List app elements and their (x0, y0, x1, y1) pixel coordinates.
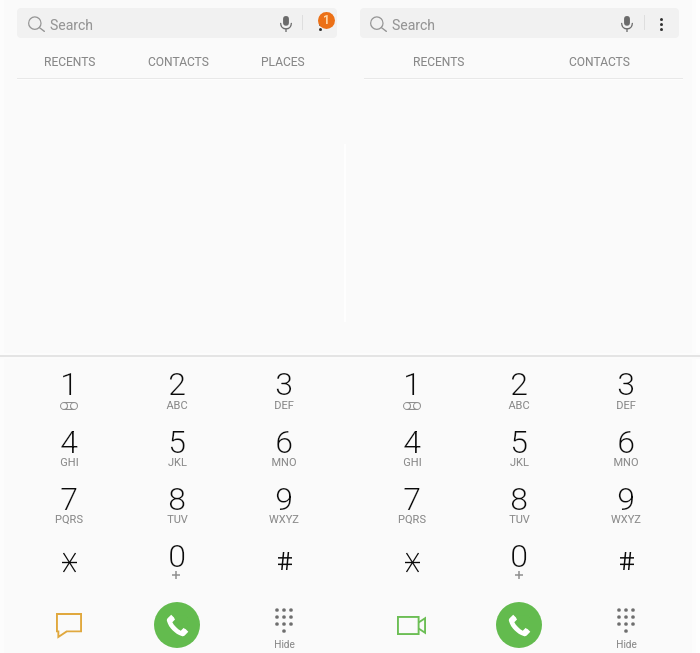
button[interactable] (24, 413, 114, 468)
staticText: Search (50, 17, 94, 33)
staticText: CONTACTS (148, 55, 209, 69)
staticText: MNO (271, 456, 297, 469)
staticText: RECENTS (44, 55, 96, 69)
button[interactable] (581, 355, 671, 410)
staticText: TUV (509, 513, 530, 526)
button[interactable] (581, 527, 671, 582)
button[interactable]: Call (154, 602, 200, 648)
button[interactable] (24, 355, 114, 410)
button[interactable]: CONTACTS (130, 50, 226, 74)
staticText: 9 (275, 480, 293, 518)
staticText: Search (392, 17, 436, 33)
staticText: 4 (403, 423, 421, 461)
button[interactable] (367, 413, 457, 468)
button[interactable] (367, 527, 457, 582)
button[interactable]: Call (496, 602, 542, 648)
staticText: 0 (510, 537, 528, 575)
staticText: 1 (403, 365, 421, 403)
staticText: WXYZ (269, 513, 299, 526)
button[interactable] (132, 470, 222, 525)
staticText: DEF (274, 399, 294, 412)
button[interactable] (132, 527, 222, 582)
button[interactable] (474, 413, 564, 468)
staticText: WXYZ (611, 513, 641, 526)
staticText: 1 (60, 365, 78, 403)
button[interactable]: Hide keypad (598, 600, 654, 652)
button[interactable] (367, 470, 457, 525)
staticText: 2 (510, 365, 528, 403)
staticText: 6 (617, 423, 635, 461)
staticText: ABC (508, 399, 530, 412)
staticText: Hide (274, 639, 295, 651)
staticText: 1 (323, 13, 330, 27)
button[interactable]: More options (313, 14, 327, 35)
staticText: JKL (168, 456, 187, 469)
button[interactable] (474, 527, 564, 582)
button[interactable]: More options (654, 14, 668, 35)
button[interactable] (474, 355, 564, 410)
button[interactable] (239, 470, 329, 525)
staticText: 0 (168, 537, 186, 575)
staticText: 5 (168, 423, 186, 461)
button[interactable] (367, 355, 457, 410)
staticText: Hide (616, 639, 637, 651)
staticText: DEF (616, 399, 636, 412)
button[interactable] (24, 470, 114, 525)
staticText: 7 (60, 480, 78, 518)
button[interactable] (132, 413, 222, 468)
staticText: GHI (60, 456, 79, 469)
staticText: CONTACTS (569, 55, 630, 69)
button[interactable]: 1 notification (318, 12, 335, 29)
staticText: PQRS (55, 513, 83, 526)
button[interactable] (474, 470, 564, 525)
staticText: 4 (60, 423, 78, 461)
button[interactable] (239, 413, 329, 468)
button[interactable]: Hide keypad (256, 600, 312, 652)
staticText: 5 (510, 423, 528, 461)
button[interactable] (24, 527, 114, 582)
button[interactable]: RECENTS (22, 50, 118, 74)
button[interactable] (239, 527, 329, 582)
button[interactable] (360, 8, 679, 38)
staticText: 9 (617, 480, 635, 518)
staticText: RECENTS (413, 55, 465, 69)
staticText: PQRS (398, 513, 426, 526)
staticText: 6 (275, 423, 293, 461)
staticText: 8 (510, 480, 528, 518)
button[interactable]: Video call (383, 600, 439, 652)
staticText: 3 (617, 365, 635, 403)
staticText: 3 (275, 365, 293, 403)
staticText: 7 (403, 480, 421, 518)
staticText: 8 (168, 480, 186, 518)
staticText: TUV (167, 513, 188, 526)
button[interactable]: Voice search (280, 16, 292, 32)
button[interactable]: PLACES (235, 50, 331, 74)
button[interactable] (581, 470, 671, 525)
button[interactable]: Send message (41, 600, 97, 652)
button[interactable] (239, 355, 329, 410)
staticText: GHI (403, 456, 422, 469)
button[interactable]: CONTACTS (551, 50, 647, 74)
button[interactable]: Voice search (621, 16, 633, 32)
button[interactable]: RECENTS (391, 50, 487, 74)
staticText: MNO (613, 456, 639, 469)
staticText: ABC (166, 399, 188, 412)
staticText: PLACES (261, 55, 305, 69)
staticText: 2 (168, 365, 186, 403)
button[interactable] (17, 8, 337, 38)
button[interactable] (581, 413, 671, 468)
button[interactable] (132, 355, 222, 410)
staticText: JKL (510, 456, 529, 469)
